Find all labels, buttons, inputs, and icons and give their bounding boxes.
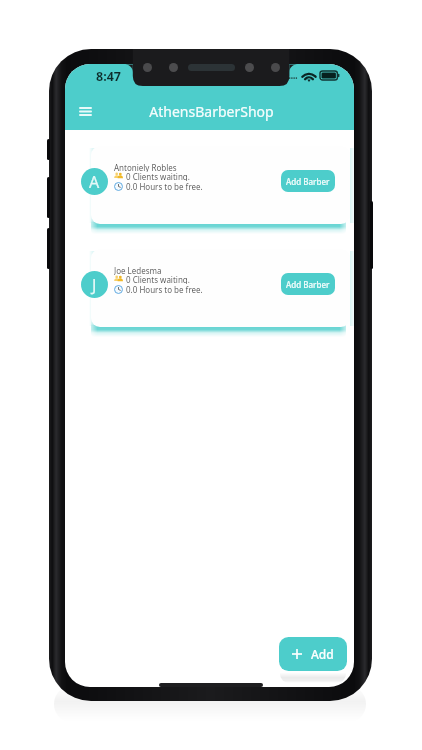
staticText: AthensBarberShop: [149, 102, 274, 121]
staticText: Joe Ledesma: [114, 265, 162, 275]
staticText: Add: [311, 646, 334, 662]
staticText: 0 Clients waiting.: [126, 171, 190, 181]
staticText: 0 Clients waiting.: [126, 274, 190, 284]
button[interactable]: [91, 249, 350, 327]
staticText: 0.0 Hours to be free.: [126, 284, 203, 294]
staticText: 8:47: [96, 68, 121, 85]
staticText: J: [92, 274, 97, 296]
button[interactable]: Add Barber: [281, 273, 335, 295]
staticText: Antoniely Robles: [114, 162, 177, 172]
staticText: 0.0 Hours to be free.: [126, 181, 203, 191]
button[interactable]: [91, 146, 350, 224]
staticText: A: [89, 171, 100, 193]
button[interactable]: Add: [279, 637, 347, 671]
staticText: Add Barber: [286, 279, 330, 290]
button[interactable]: Add Barber: [281, 170, 335, 192]
staticText: Add Barber: [286, 176, 330, 187]
button[interactable]: Open navigation menu: [71, 97, 100, 126]
